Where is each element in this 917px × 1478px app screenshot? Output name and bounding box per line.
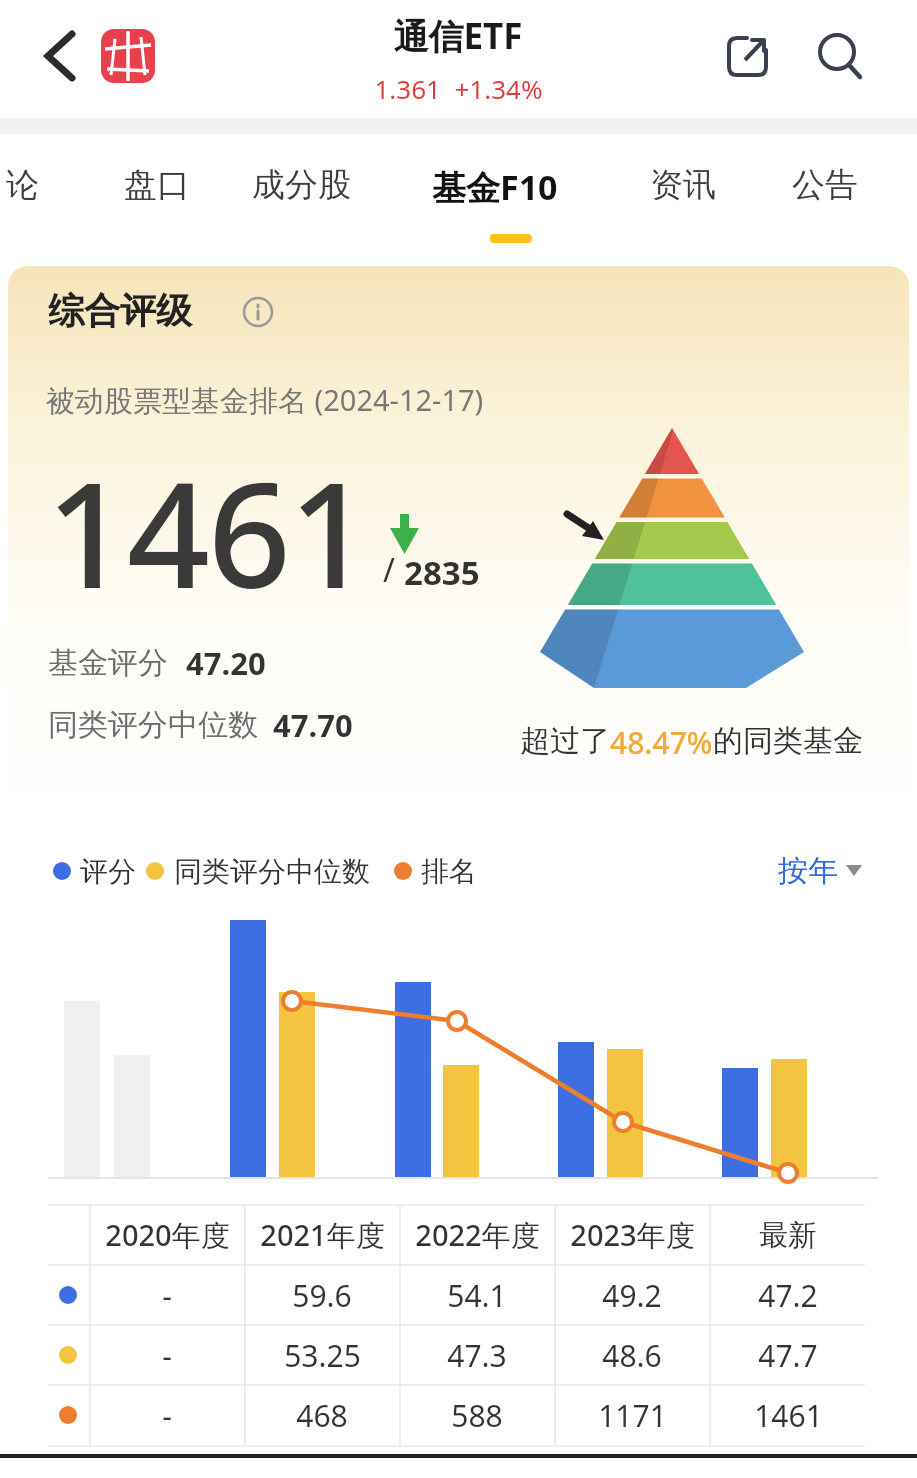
button[interactable]: 按年 bbox=[778, 852, 862, 890]
staticText: 被动股票型基金排名 (2024-12-17) bbox=[46, 380, 484, 420]
staticText: 资讯 bbox=[650, 164, 716, 206]
staticText: 1461 bbox=[46, 433, 370, 630]
staticText: 59.6 bbox=[292, 1275, 352, 1316]
staticText: 盘口 bbox=[124, 164, 190, 206]
staticText: 47.2 bbox=[758, 1275, 818, 1316]
staticText: 588 bbox=[451, 1395, 503, 1436]
staticText: 基金F10 bbox=[432, 164, 558, 210]
staticText: 基金评分 bbox=[48, 644, 168, 682]
staticText: 超过了 bbox=[520, 722, 610, 760]
staticText: 54.1 bbox=[447, 1275, 507, 1316]
staticText: 48.47% bbox=[610, 722, 713, 763]
button[interactable] bbox=[806, 22, 874, 90]
staticText: 评分 bbox=[80, 854, 136, 889]
staticText: 同类评分中位数 bbox=[48, 706, 258, 744]
staticText: 53.25 bbox=[284, 1335, 361, 1376]
button[interactable]: 资讯 bbox=[650, 164, 716, 206]
staticText: 成分股 bbox=[252, 164, 351, 206]
staticText: 综合评级 bbox=[48, 288, 192, 333]
button[interactable]: 盘口 bbox=[124, 164, 190, 206]
staticText: 2023年度 bbox=[570, 1215, 695, 1255]
staticText: 47.70 bbox=[273, 704, 353, 746]
button[interactable] bbox=[101, 29, 155, 83]
staticText: 2835 bbox=[404, 550, 480, 595]
staticText: 1171 bbox=[598, 1395, 667, 1436]
staticText: 的同类基金 bbox=[713, 722, 863, 760]
staticText: 47.20 bbox=[186, 642, 266, 684]
staticText: 47.3 bbox=[447, 1335, 507, 1376]
staticText: 2020年度 bbox=[105, 1215, 230, 1255]
button[interactable]: 成分股 bbox=[252, 164, 351, 206]
button[interactable] bbox=[30, 18, 90, 94]
staticText: 47.7 bbox=[758, 1335, 818, 1376]
staticText: - bbox=[162, 1395, 172, 1436]
staticText: 468 bbox=[296, 1395, 348, 1436]
staticText: 按年 bbox=[778, 852, 838, 890]
staticText: 同类评分中位数 bbox=[174, 854, 370, 889]
staticText: 通信ETF bbox=[393, 12, 523, 60]
button[interactable] bbox=[238, 292, 278, 332]
button[interactable]: 公告 bbox=[792, 164, 858, 206]
staticText: 1461 bbox=[754, 1395, 823, 1436]
button[interactable]: 基金F10 bbox=[432, 164, 558, 210]
staticText: 2022年度 bbox=[415, 1215, 540, 1255]
staticText: 公告 bbox=[792, 164, 858, 206]
staticText: 排名 bbox=[421, 854, 477, 889]
staticText: 2021年度 bbox=[260, 1215, 385, 1255]
button[interactable]: 论 bbox=[6, 164, 39, 206]
staticText: / bbox=[383, 548, 395, 592]
button[interactable] bbox=[714, 22, 782, 90]
staticText: - bbox=[162, 1275, 172, 1316]
staticText: 最新 bbox=[759, 1217, 817, 1254]
staticText: 论 bbox=[6, 164, 39, 206]
staticText: - bbox=[162, 1335, 172, 1376]
staticText: 1.361 +1.34% bbox=[374, 71, 543, 106]
staticText: 49.2 bbox=[602, 1275, 662, 1316]
staticText: 48.6 bbox=[602, 1335, 662, 1376]
